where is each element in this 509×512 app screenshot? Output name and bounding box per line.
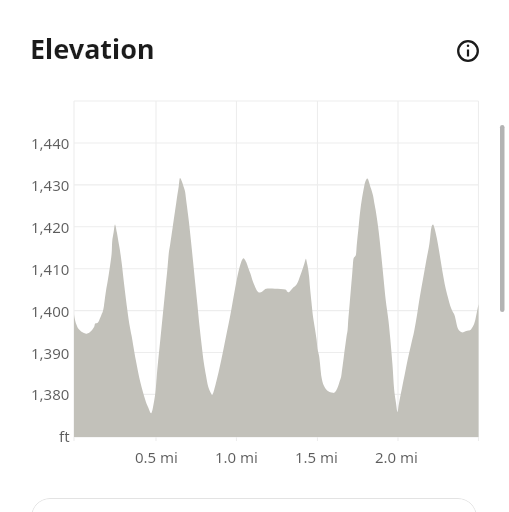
staticText: 1,400: [31, 301, 70, 321]
staticText: 1,420: [31, 217, 70, 237]
button[interactable]: [31, 498, 477, 512]
staticText: 1,390: [31, 343, 70, 363]
button[interactable]: Info: [447, 30, 488, 71]
staticText: 2.0 mi: [375, 447, 418, 467]
staticText: 1.0 mi: [215, 447, 258, 467]
staticText: Elevation: [30, 30, 155, 67]
staticText: 1,380: [31, 384, 70, 404]
staticText: 1.5 mi: [295, 447, 338, 467]
staticText: 1,430: [31, 175, 70, 195]
staticText: 1,410: [31, 259, 70, 279]
staticText: ft: [59, 426, 70, 446]
staticText: 1,440: [31, 133, 70, 153]
staticText: 0.5 mi: [135, 447, 178, 467]
